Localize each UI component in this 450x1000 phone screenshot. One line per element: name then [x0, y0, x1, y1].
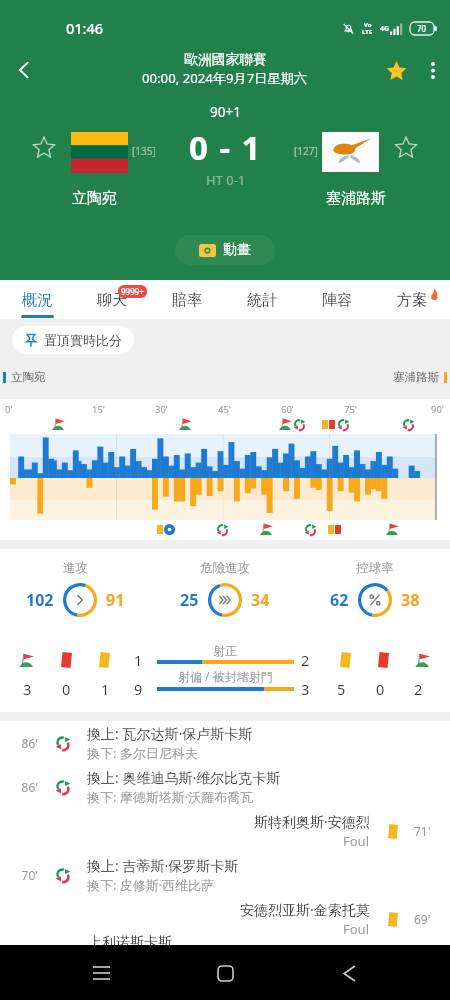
staticText: 38 [401, 589, 420, 611]
staticText: 立陶宛 [11, 370, 46, 384]
staticText: 上利诺斯卡斯 [88, 934, 172, 945]
staticText: 69' [414, 911, 438, 927]
staticText: 控球率 [356, 560, 394, 576]
staticText: 立陶宛 [72, 189, 117, 208]
button[interactable]: 置頂實時比分 [12, 326, 134, 354]
button[interactable]: 陣容 [300, 280, 375, 319]
staticText: Foul [343, 920, 370, 938]
staticText: 86' [12, 735, 38, 751]
staticText: 3 [301, 679, 310, 699]
staticText: 3 [23, 679, 32, 699]
staticText: 9999+ [121, 286, 144, 297]
staticText: 進攻 [63, 560, 88, 576]
staticText: 換上: 吉蒂斯·保罗斯卡斯 [87, 856, 239, 875]
staticText: 射正 [213, 643, 237, 658]
button[interactable]: Favourite home team [33, 136, 55, 158]
staticText: 統計 [247, 290, 278, 309]
staticText: 60' [281, 403, 295, 416]
staticText: 塞浦路斯 [393, 370, 439, 384]
staticText: 換下: 摩德斯塔斯·沃羅布喬瓦 [87, 788, 254, 806]
button[interactable]: 86' [0, 765, 450, 809]
staticText: 2 [414, 679, 423, 699]
staticText: 70' [12, 867, 38, 883]
staticText: 25 [180, 589, 199, 611]
button[interactable]: More options [416, 46, 450, 94]
staticText: 01:46 [66, 18, 104, 38]
staticText: 86' [12, 779, 38, 795]
staticText: 歐洲國家聯賽 [184, 51, 267, 68]
staticText: 方案 [397, 290, 428, 309]
button[interactable]: 動畫 [175, 235, 275, 265]
button[interactable]: 86' [0, 721, 450, 765]
button[interactable]: 安德烈亚斯·金索托莫 [0, 897, 450, 941]
staticText: 4G [380, 24, 390, 34]
button[interactable]: 斯特利奥斯·安德烈 [0, 809, 450, 853]
staticText: [127] [294, 144, 318, 158]
staticText: Foul [343, 832, 370, 850]
staticText: 90+1 [210, 103, 241, 121]
staticText: 換下: 皮修斯·西维比萨 [87, 876, 215, 894]
staticText: 射偏 / 被封堵射門 [178, 668, 273, 684]
staticText: 9 [134, 679, 143, 699]
staticText: 斯特利奥斯·安德烈 [254, 812, 370, 831]
button[interactable]: Recents [78, 950, 124, 996]
staticText: 1 [134, 650, 143, 670]
staticText: 聊天 [97, 290, 128, 309]
staticText: 安德烈亚斯·金索托莫 [240, 900, 370, 919]
staticText: 62 [330, 589, 349, 611]
staticText: 0' [5, 403, 13, 416]
staticText: 陣容 [322, 290, 353, 309]
staticText: 45' [218, 403, 232, 416]
button[interactable]: 方案 [375, 280, 450, 319]
button[interactable]: Home [202, 950, 248, 996]
button[interactable]: Favourite away team [395, 136, 417, 158]
staticText: 0 - 1 [189, 125, 262, 170]
staticText: 換上: 瓦尔达斯·保卢斯卡斯 [87, 724, 253, 743]
button[interactable]: Back [326, 950, 372, 996]
staticText: Vo [364, 21, 372, 29]
button[interactable]: Back [0, 46, 48, 94]
staticText: [135] [132, 144, 156, 158]
staticText: 75' [344, 403, 358, 416]
staticText: 70 [417, 23, 427, 34]
staticText: 71' [414, 823, 438, 839]
button[interactable]: 統計 [225, 280, 300, 319]
staticText: 30' [155, 403, 169, 416]
staticText: HT 0-1 [206, 171, 246, 189]
staticText: 2 [301, 650, 310, 670]
staticText: 0 [62, 679, 71, 699]
staticText: 0 [376, 679, 385, 699]
button[interactable]: 聊天 [75, 280, 150, 319]
staticText: 90' [431, 403, 445, 416]
staticText: 15' [92, 403, 106, 416]
staticText: 換上: 奥维迪乌斯·维尔比克卡斯 [87, 768, 281, 787]
staticText: 5 [337, 679, 346, 699]
staticText: 102 [26, 589, 54, 611]
staticText: 賠率 [172, 290, 203, 309]
staticText: 塞浦路斯 [326, 189, 386, 208]
button[interactable]: 賠率 [150, 280, 225, 319]
staticText: 00:00, 2024年9月7日星期六 [142, 69, 308, 87]
staticText: 1 [101, 679, 110, 699]
button[interactable]: 70' [0, 853, 450, 897]
staticText: 34 [251, 589, 270, 611]
staticText: 91 [106, 589, 125, 611]
staticText: LTE [362, 28, 373, 36]
staticText: 動畫 [223, 241, 251, 259]
button[interactable]: 概況 [0, 280, 75, 319]
button[interactable]: Favourite [376, 46, 416, 94]
staticText: 概況 [22, 290, 53, 309]
staticText: 置頂實時比分 [44, 332, 122, 348]
staticText: 換下: 多尔日尼科夫 [87, 744, 198, 762]
staticText: 危險進攻 [200, 560, 250, 576]
